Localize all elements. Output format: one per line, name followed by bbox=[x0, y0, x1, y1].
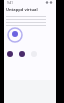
button[interactable] bbox=[31, 51, 37, 57]
button[interactable] bbox=[7, 51, 13, 57]
staticText: Untappd virtual bbox=[6, 7, 38, 12]
staticText: 9:41 bbox=[7, 1, 13, 5]
button[interactable] bbox=[19, 51, 25, 57]
